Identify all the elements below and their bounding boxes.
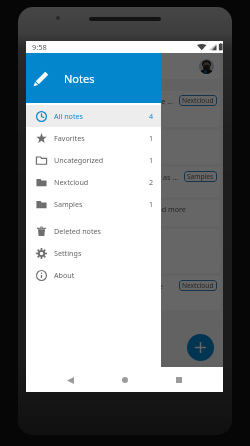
staticText: Another note here [35, 134, 213, 144]
staticText: Settings [54, 248, 82, 258]
staticText: 1 [149, 133, 154, 143]
button[interactable]: Back [59, 369, 81, 391]
button[interactable]: Favorites [26, 127, 161, 149]
button[interactable]: A note with quite a long title and some … [29, 91, 220, 127]
staticText: 9:58 [32, 42, 47, 52]
button[interactable]: Settings [26, 242, 161, 264]
button[interactable]: Swipe a note to the left or right to rea… [29, 200, 220, 226]
staticText: Notes [64, 71, 95, 86]
staticText: Yet another note with a long title here [35, 281, 175, 291]
button[interactable]: Nextcloud [182, 96, 214, 105]
button[interactable]: A sample note that has examples in it as… [29, 167, 220, 197]
button[interactable]: Another note here [29, 130, 220, 164]
staticText: 4 [149, 111, 154, 121]
button[interactable]: Samples [26, 193, 161, 215]
staticText: 2 [149, 177, 154, 187]
button[interactable]: Account [199, 59, 214, 74]
button[interactable]: Search in all notes [29, 53, 220, 79]
staticText: Nextcloud [182, 281, 214, 290]
button[interactable]: Nextcloud [182, 281, 214, 290]
button[interactable]: Uncategorized [26, 149, 161, 171]
button[interactable]: Recent apps [168, 369, 190, 391]
button[interactable]: Yet another note with a long title here [29, 276, 220, 310]
staticText: Samples [54, 199, 83, 209]
button[interactable]: Samples [187, 172, 214, 181]
staticText: A sample note that has examples in it as… [35, 172, 180, 182]
staticText: Favorites [54, 133, 85, 143]
staticText: Deleted notes [54, 226, 102, 236]
staticText: All notes [54, 111, 84, 121]
staticText: Nextcloud [54, 177, 89, 187]
staticText: Swipe a note to the left or right to rea… [35, 204, 186, 214]
button[interactable]: Home [114, 369, 136, 391]
staticText: Uncategorized [54, 155, 104, 165]
button[interactable]: Deleted notes [26, 220, 161, 242]
staticText: About [54, 270, 75, 280]
staticText: A note with quite a long title and some … [35, 96, 175, 106]
button[interactable]: About [26, 264, 161, 286]
staticText: 1 [149, 199, 154, 209]
button[interactable]: All notes [26, 105, 161, 127]
staticText: One more note [35, 233, 213, 243]
button[interactable]: One more note [29, 229, 220, 273]
button[interactable]: Nextcloud [26, 171, 161, 193]
staticText: Samples [187, 172, 214, 181]
staticText: 1 [149, 155, 154, 165]
button[interactable]: New note [187, 334, 214, 361]
staticText: Nextcloud [182, 96, 214, 105]
